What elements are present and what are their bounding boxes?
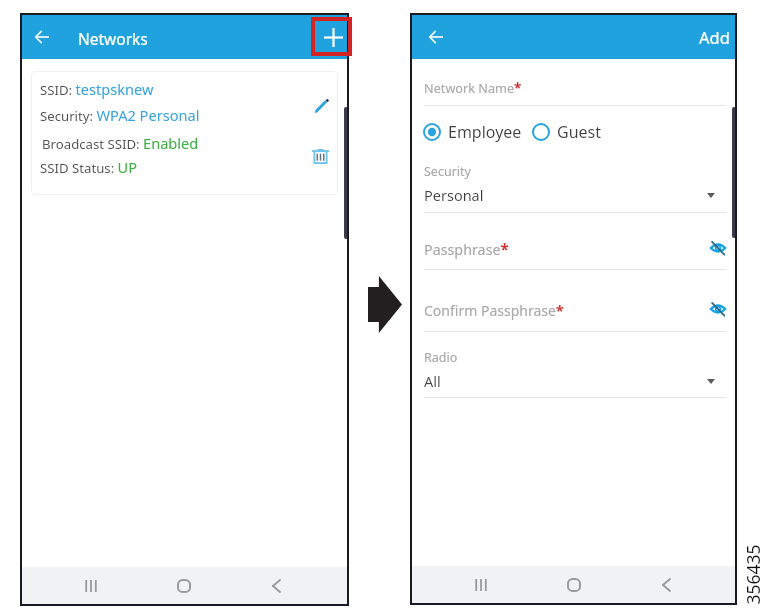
staticText: All (424, 371, 441, 391)
staticText: Security (424, 163, 471, 180)
button[interactable]: Show passphrase (706, 236, 730, 260)
button[interactable]: Add (311, 15, 355, 59)
button[interactable]: SSID: testpsknew (31, 71, 338, 195)
button[interactable]: Back (25, 15, 59, 59)
button[interactable]: Delete (307, 143, 333, 169)
staticText: Guest (557, 121, 602, 143)
staticText: Radio (424, 349, 458, 366)
staticText: Confirm Passphrase* (424, 300, 564, 320)
button[interactable]: Home (560, 566, 588, 603)
button[interactable]: Home (170, 567, 198, 604)
staticText: Add (699, 26, 730, 48)
staticText: Personal (424, 185, 484, 205)
staticText: Network Name* (424, 79, 522, 97)
staticText: Employee (448, 121, 522, 143)
staticText: SSID: testpsknew (40, 79, 154, 99)
button[interactable]: Recent apps (77, 567, 105, 604)
button[interactable]: Personal (424, 185, 726, 205)
button[interactable]: Edit (308, 93, 334, 119)
button[interactable]: All (424, 371, 726, 391)
staticText: Security: WPA2 Personal (40, 105, 200, 125)
button[interactable]: Employee (423, 121, 522, 143)
button[interactable]: Show confirm passphrase (706, 297, 730, 321)
staticText: Networks (78, 28, 148, 49)
staticText: Broadcast SSID: Enabled (42, 133, 199, 153)
button[interactable]: Guest (532, 121, 602, 143)
staticText: Passphrase* (424, 239, 509, 260)
button[interactable]: Back (262, 567, 290, 604)
staticText: 356435 (740, 543, 764, 604)
button[interactable]: Recent apps (467, 566, 495, 603)
button[interactable]: Back (652, 566, 680, 603)
button[interactable]: Back (419, 15, 453, 59)
button[interactable]: Add (681, 15, 735, 59)
staticText: SSID Status: UP (40, 157, 138, 177)
